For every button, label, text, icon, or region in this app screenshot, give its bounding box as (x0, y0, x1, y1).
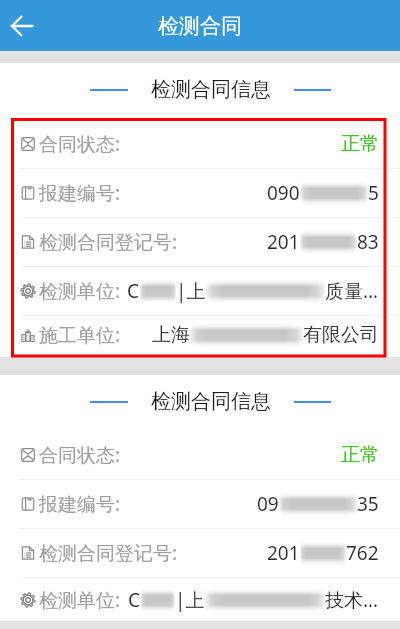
button[interactable]: 检测合同登记号: (0, 218, 400, 266)
staticText: 090 (267, 180, 300, 206)
staticText: 报建编号: (39, 180, 121, 206)
staticText: 正常 (341, 132, 379, 156)
staticText: C (128, 587, 141, 613)
staticText: 检测单位: (39, 587, 121, 613)
staticText: C (127, 278, 140, 304)
staticText: 检测合同 (158, 13, 242, 39)
staticText: 201 (267, 229, 300, 255)
staticText: 5 (368, 180, 379, 206)
staticText: 09 (257, 491, 279, 517)
staticText: 201 (267, 540, 300, 566)
staticText: |上 (176, 278, 206, 304)
button[interactable]: Back (0, 4, 44, 48)
staticText: 合同状态: (39, 442, 121, 468)
staticText: 检测合同信息 (151, 389, 271, 414)
button[interactable]: 施工单位: (0, 316, 400, 354)
staticText: 检测合同登记号: (39, 229, 178, 255)
staticText: 上海 (152, 323, 190, 347)
staticText: 质量… (325, 278, 379, 304)
staticText: 报建编号: (39, 491, 121, 517)
button[interactable]: 报建编号: (0, 480, 400, 528)
button[interactable]: 合同状态: (0, 119, 400, 168)
button[interactable]: 检测单位: (0, 267, 400, 315)
staticText: 合同状态: (39, 131, 121, 157)
button[interactable]: 合同状态: (0, 430, 400, 479)
button[interactable]: 报建编号: (0, 169, 400, 217)
staticText: 检测合同信息 (151, 77, 271, 102)
staticText: 检测单位: (39, 278, 121, 304)
staticText: 检测合同登记号: (39, 540, 178, 566)
staticText: 83 (357, 229, 379, 255)
staticText: |上 (175, 587, 205, 613)
button[interactable]: 检测单位: (0, 578, 400, 621)
staticText: 施工单位: (39, 322, 121, 348)
staticText: 技术… (325, 587, 379, 613)
staticText: 762 (346, 540, 379, 566)
button[interactable]: 检测合同登记号: (0, 529, 400, 577)
staticText: 有限公司 (303, 323, 379, 347)
staticText: 正常 (341, 443, 379, 467)
staticText: 35 (357, 491, 379, 517)
